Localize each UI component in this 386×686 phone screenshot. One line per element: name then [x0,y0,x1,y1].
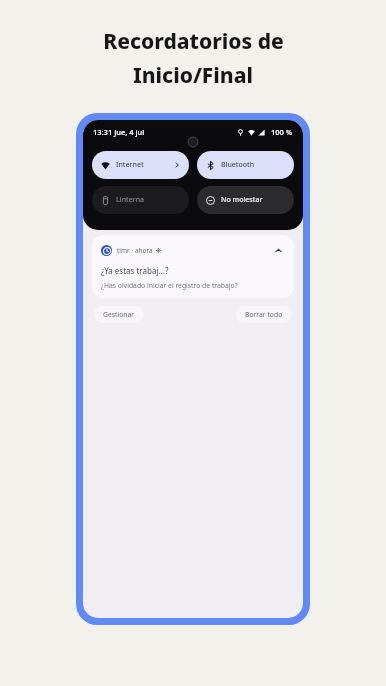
staticText: 13:31 Jue, 4 jul [93,127,145,137]
staticText: No molestar [221,195,263,205]
button[interactable]: Bluetooth [197,151,294,179]
staticText: Internet [116,160,144,170]
staticText: timr · ahora [117,246,153,255]
button[interactable]: Internet [92,151,189,179]
staticText: ¿Ya estas trabaj...? [101,265,169,276]
staticText: Gestionar [103,310,135,319]
button[interactable]: timr · ahora [92,235,294,298]
button[interactable]: Gestionar [94,306,144,323]
staticText: Recordatorios de [103,27,284,56]
staticText: Borrar todo [245,310,283,319]
button[interactable]: Linterna [92,186,189,214]
button[interactable]: Collapse notification [271,243,285,257]
button[interactable]: Borrar todo [236,306,292,323]
staticText: Bluetooth [221,160,255,170]
staticText: ¿Has olvidado iniciar el registro de tra… [101,281,238,290]
staticText: Inicio/Final [133,61,253,90]
staticText: 100 % [271,127,293,137]
button[interactable]: No molestar [197,186,294,214]
staticText: Linterna [116,195,145,205]
